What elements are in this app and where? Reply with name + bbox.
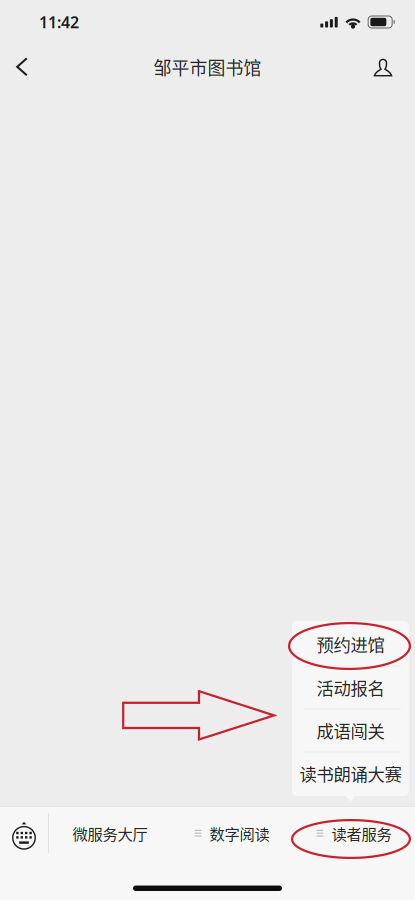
staticText: 读者服务 bbox=[331, 822, 391, 844]
button[interactable]: 活动报名 bbox=[292, 665, 409, 708]
button[interactable]: Profile bbox=[361, 44, 405, 90]
staticText: 微服务大厅 bbox=[72, 822, 147, 844]
button[interactable]: 微服务大厅 bbox=[49, 807, 171, 860]
button[interactable]: 读者服务 bbox=[293, 807, 415, 860]
staticText: 活动报名 bbox=[316, 675, 384, 700]
staticText: 数字阅读 bbox=[209, 822, 269, 844]
staticText: 邹平市图书馆 bbox=[153, 54, 261, 80]
staticText: 读书朗诵大赛 bbox=[299, 761, 401, 786]
button[interactable]: Back bbox=[0, 44, 44, 90]
staticText: 预约进馆 bbox=[316, 631, 384, 657]
button[interactable]: Keyboard bbox=[0, 807, 48, 859]
staticText: 11:42 bbox=[39, 11, 79, 33]
button[interactable]: 预约进馆 bbox=[292, 622, 409, 665]
button[interactable]: 数字阅读 bbox=[171, 807, 293, 860]
button[interactable]: 读书朗诵大赛 bbox=[292, 751, 409, 794]
button[interactable]: 成语闯关 bbox=[292, 708, 409, 751]
staticText: 成语闯关 bbox=[316, 718, 384, 743]
